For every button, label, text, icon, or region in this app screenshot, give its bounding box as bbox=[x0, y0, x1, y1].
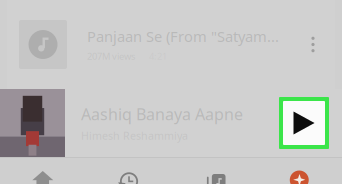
button[interactable]: History bbox=[85, 158, 171, 184]
button[interactable]: Panjaan Se (From Satyam) bbox=[0, 0, 342, 89]
staticText: Panjaan Se (From "Satyam... bbox=[87, 27, 279, 46]
button[interactable]: Library bbox=[171, 158, 256, 184]
button[interactable]: Profile bbox=[256, 158, 342, 184]
staticText: Himesh Reshammiya bbox=[81, 128, 188, 143]
button[interactable]: Play bbox=[279, 97, 329, 149]
staticText: 207M views bbox=[87, 50, 135, 62]
button[interactable]: Home bbox=[0, 158, 85, 184]
staticText: Aashiq Banaya Aapne bbox=[81, 103, 243, 124]
